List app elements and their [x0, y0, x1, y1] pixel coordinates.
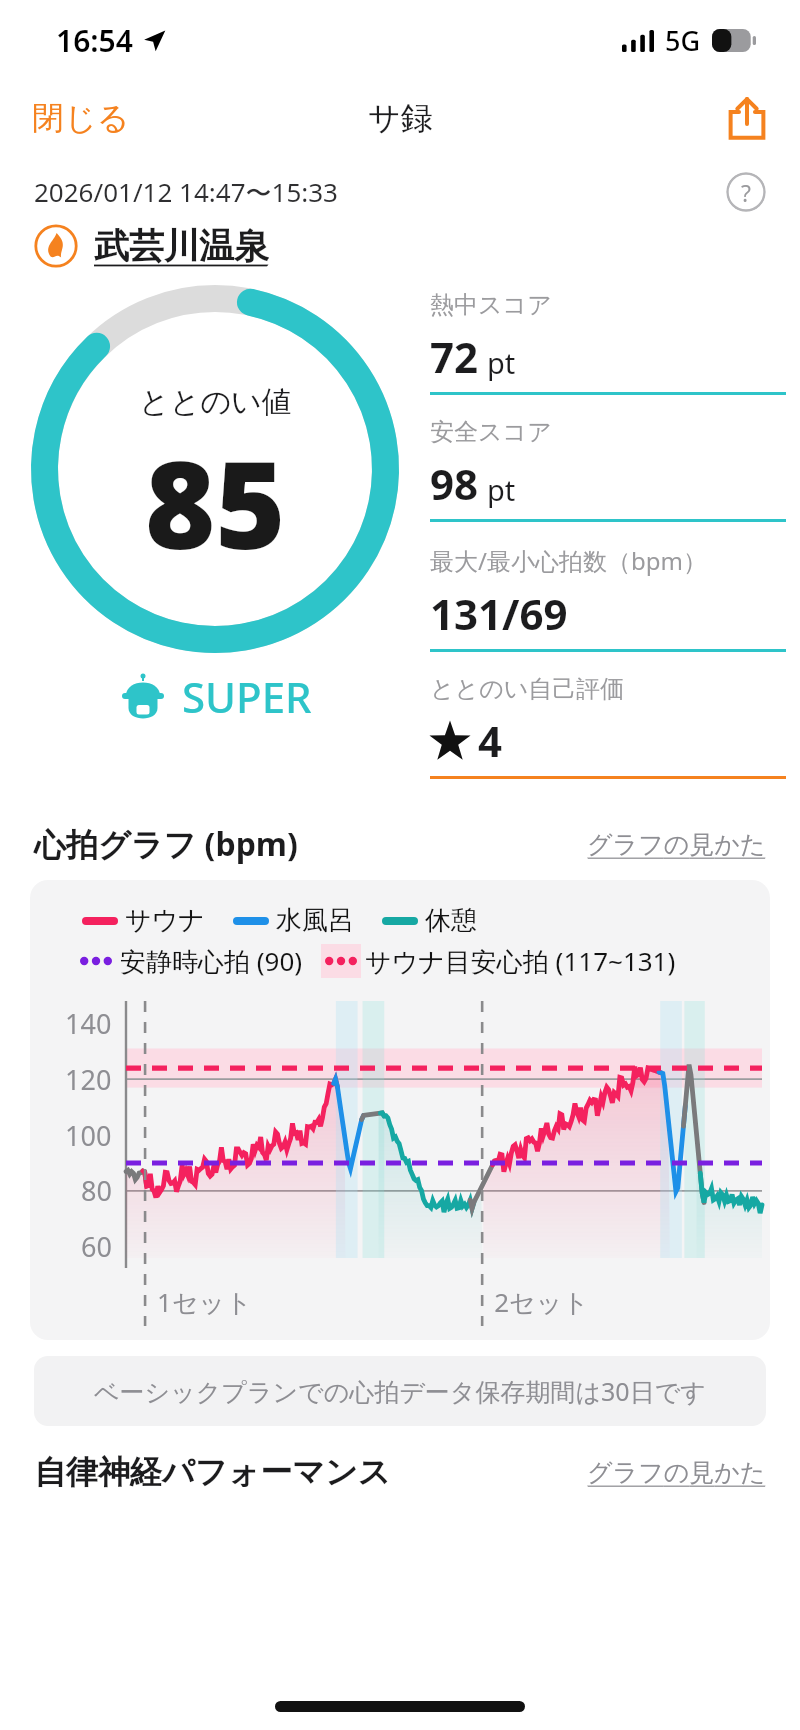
staticText: 2026/01/12 14:47〜15:33 — [34, 174, 338, 210]
staticText: 72 — [430, 328, 479, 385]
button[interactable]: グラフの見かた — [587, 829, 766, 860]
staticText: 武芸川温泉 — [94, 224, 269, 268]
staticText: pt — [487, 343, 516, 382]
staticText: サウナ目安心拍 (117~131) — [365, 943, 676, 979]
staticText: SUPER — [182, 668, 312, 725]
staticText: 98 — [430, 455, 479, 512]
staticText: 熱中スコア — [430, 290, 552, 320]
staticText: ベーシックプランでの心拍データ保存期間は30日です — [94, 1374, 706, 1408]
staticText: 5G — [665, 22, 701, 59]
staticText: 安全スコア — [430, 417, 552, 447]
button[interactable]: 閉じる — [18, 90, 144, 146]
staticText: 4 — [478, 712, 503, 769]
staticText: ? — [741, 177, 751, 208]
staticText: pt — [487, 470, 516, 509]
staticText: 16:54 — [56, 20, 133, 61]
button[interactable]: ベーシックプランでの心拍データ保存期間は30日です — [34, 1356, 766, 1426]
staticText: 85 — [145, 421, 286, 584]
staticText: サウナ — [125, 904, 205, 937]
staticText: グラフの見かた — [587, 1457, 766, 1488]
staticText: 最大/最小心拍数（bpm） — [430, 544, 707, 577]
button[interactable]: 共有 — [718, 89, 776, 147]
staticText: 水風呂 — [276, 904, 354, 937]
staticText: 心拍グラフ (bpm) — [34, 822, 298, 866]
button[interactable]: ヘルプ — [726, 172, 766, 212]
staticText: ととのい自己評価 — [430, 674, 625, 704]
staticText: 自律神経パフォーマンス — [34, 1452, 391, 1492]
staticText: 休憩 — [425, 904, 477, 937]
staticText: 閉じる — [32, 98, 130, 138]
staticText: グラフの見かた — [587, 829, 766, 860]
staticText: ととのい値 — [139, 383, 292, 421]
staticText: サ録 — [368, 98, 433, 138]
button[interactable]: 武芸川温泉 — [34, 224, 269, 268]
staticText: 131/69 — [430, 585, 568, 642]
staticText: 安静時心拍 (90) — [120, 943, 303, 979]
button[interactable]: グラフの見かた — [587, 1457, 766, 1488]
